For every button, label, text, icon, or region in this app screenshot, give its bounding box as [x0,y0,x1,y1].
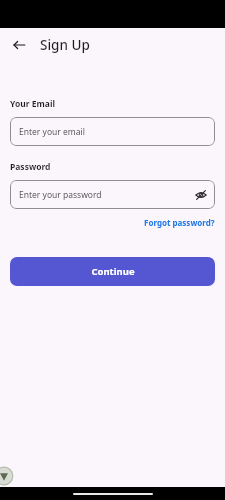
staticText: Sign Up [40,36,90,54]
staticText: Password [10,161,51,173]
button[interactable]: Back [8,34,30,56]
button[interactable]: Continue [10,257,215,286]
staticText: Enter your password [19,189,102,201]
button[interactable]: Show password [194,188,208,202]
button[interactable]: Enter your password [10,180,215,209]
button[interactable]: Forgot password? [144,217,215,228]
staticText: Your Email [10,98,55,110]
button[interactable]: Enter your email [10,117,215,146]
staticText: Continue [91,265,135,278]
staticText: Enter your email [19,126,85,138]
staticText: Forgot password? [144,217,215,228]
